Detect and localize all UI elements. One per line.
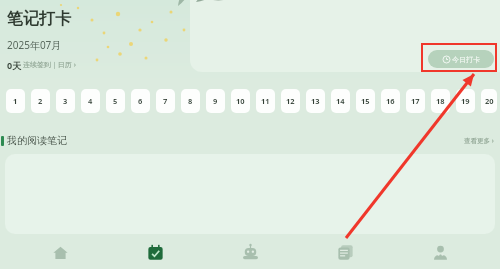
staticText: 14	[336, 96, 345, 106]
button[interactable]: 18	[431, 89, 450, 113]
staticText: 连续签到｜日历 ›	[23, 60, 76, 70]
button[interactable]: 1	[6, 89, 25, 113]
button[interactable]: 6	[131, 89, 150, 113]
staticText: 16	[386, 96, 395, 106]
staticText: 6	[138, 96, 143, 106]
button[interactable]: 7	[156, 89, 175, 113]
button[interactable]: 0天	[7, 59, 76, 71]
button[interactable]: 15	[356, 89, 375, 113]
staticText: 17	[411, 96, 420, 106]
button[interactable]: 2	[31, 89, 50, 113]
button[interactable]: AI assistant	[215, 235, 285, 269]
button[interactable]: 12	[281, 89, 300, 113]
staticText: 11	[261, 96, 270, 106]
button[interactable]: 20	[481, 89, 497, 113]
button[interactable]: 4	[81, 89, 100, 113]
button[interactable]: 19	[456, 89, 475, 113]
staticText: 今日打卡	[452, 55, 480, 64]
button[interactable]: 16	[381, 89, 400, 113]
button[interactable]: 8	[181, 89, 200, 113]
staticText: 7	[163, 96, 168, 106]
staticText: 4	[88, 96, 93, 106]
staticText: 8	[188, 96, 193, 106]
button[interactable]: 9	[206, 89, 225, 113]
staticText: 查看更多 ›	[464, 136, 494, 145]
staticText: 1	[13, 96, 18, 106]
staticText: 19	[461, 96, 470, 106]
button[interactable]: Profile	[405, 235, 475, 269]
staticText: 我的阅读笔记	[7, 134, 67, 147]
button[interactable]: 11	[256, 89, 275, 113]
staticText: 2025年07月	[7, 38, 62, 52]
button[interactable]: Notes	[310, 235, 380, 269]
button[interactable]: 查看更多 ›	[464, 136, 494, 145]
button[interactable]: 10	[231, 89, 250, 113]
button[interactable]: 5	[106, 89, 125, 113]
button[interactable]: 17	[406, 89, 425, 113]
button[interactable]: 3	[56, 89, 75, 113]
staticText: 15	[361, 96, 370, 106]
button[interactable]: Check in	[120, 235, 190, 269]
staticText: 18	[436, 96, 445, 106]
staticText: 笔记打卡	[7, 9, 71, 29]
staticText: 10	[236, 96, 245, 106]
staticText: 5	[113, 96, 118, 106]
staticText: 2	[38, 96, 43, 106]
button[interactable]: 14	[331, 89, 350, 113]
button[interactable]	[5, 154, 495, 234]
button[interactable]: Home	[25, 235, 95, 269]
button[interactable]: 今日打卡	[428, 50, 494, 68]
staticText: 20	[485, 96, 494, 106]
staticText: 9	[213, 96, 218, 106]
staticText: 0天	[7, 59, 22, 71]
button[interactable]: 13	[306, 89, 325, 113]
staticText: 12	[286, 96, 295, 106]
staticText: 3	[63, 96, 68, 106]
staticText: 13	[311, 96, 320, 106]
